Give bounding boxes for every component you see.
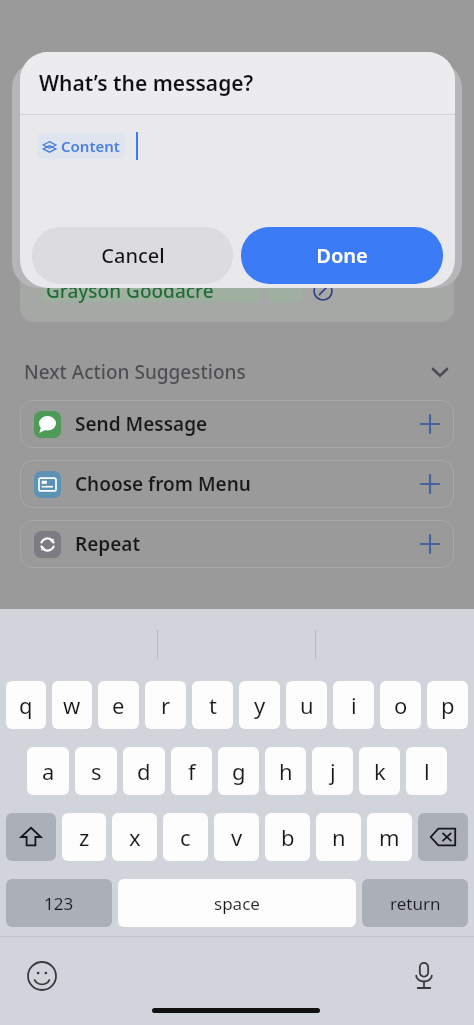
staticText: return bbox=[390, 892, 441, 915]
button[interactable]: Send Message bbox=[20, 400, 454, 448]
staticText: j bbox=[330, 756, 336, 786]
staticText: n bbox=[332, 822, 346, 852]
button[interactable]: e bbox=[98, 681, 139, 729]
other: Add Send Message bbox=[420, 414, 440, 434]
staticText: c bbox=[180, 822, 191, 852]
button[interactable]: n bbox=[316, 813, 361, 861]
button[interactable]: l bbox=[406, 747, 447, 795]
staticText: v bbox=[231, 822, 243, 852]
staticText: o bbox=[394, 690, 408, 720]
other: Collapse bbox=[430, 362, 450, 382]
staticText: b bbox=[281, 822, 295, 852]
button[interactable]: k bbox=[359, 747, 400, 795]
button[interactable]: x bbox=[112, 813, 157, 861]
staticText: s bbox=[91, 756, 102, 786]
button[interactable]: Cancel bbox=[32, 227, 233, 284]
button[interactable]: f bbox=[171, 747, 212, 795]
button[interactable]: Choose from Menu bbox=[20, 460, 454, 508]
staticText: Content bbox=[61, 136, 120, 156]
button[interactable]: Emoji bbox=[20, 954, 64, 998]
button[interactable]: o bbox=[380, 681, 421, 729]
staticText: f bbox=[188, 756, 196, 786]
other: Add Repeat bbox=[420, 534, 440, 554]
staticText: Repeat bbox=[75, 531, 141, 557]
staticText: What’s the message? bbox=[39, 69, 254, 98]
staticText: g bbox=[232, 756, 246, 786]
button[interactable]: t bbox=[192, 681, 233, 729]
staticText: r bbox=[161, 690, 171, 720]
staticText: l bbox=[424, 756, 430, 786]
button[interactable]: Repeat bbox=[20, 520, 454, 568]
button[interactable]: b bbox=[265, 813, 310, 861]
button[interactable]: space bbox=[118, 879, 356, 927]
staticText: x bbox=[129, 822, 141, 852]
button[interactable]: d bbox=[123, 747, 165, 795]
staticText: w bbox=[63, 690, 81, 720]
button[interactable]: c bbox=[163, 813, 208, 861]
staticText: Send Message bbox=[75, 411, 208, 437]
button[interactable]: m bbox=[367, 813, 412, 861]
staticText: m bbox=[379, 822, 400, 852]
button[interactable]: z bbox=[62, 813, 106, 861]
button[interactable]: Done bbox=[241, 227, 443, 284]
staticText: p bbox=[441, 690, 455, 720]
button[interactable]: j bbox=[312, 747, 353, 795]
staticText: Choose from Menu bbox=[75, 471, 251, 497]
button[interactable]: Content bbox=[37, 133, 125, 159]
button[interactable]: Backspace bbox=[418, 813, 468, 861]
button[interactable]: Next Action Suggestions bbox=[0, 352, 474, 392]
staticText: d bbox=[137, 756, 151, 786]
staticText: e bbox=[112, 690, 125, 720]
staticText: z bbox=[79, 822, 90, 852]
staticText: y bbox=[254, 690, 266, 720]
button[interactable]: 123 bbox=[6, 879, 112, 927]
button[interactable]: a bbox=[27, 747, 69, 795]
staticText: Grayson Goodacre bbox=[46, 278, 214, 304]
button[interactable]: return bbox=[362, 879, 468, 927]
button[interactable]: p bbox=[427, 681, 468, 729]
staticText: q bbox=[19, 690, 33, 720]
button[interactable]: y bbox=[239, 681, 280, 729]
staticText: k bbox=[374, 756, 386, 786]
staticText: t bbox=[209, 690, 217, 720]
other: Add Choose from Menu bbox=[420, 474, 440, 494]
button[interactable]: s bbox=[75, 747, 117, 795]
button[interactable]: Shift bbox=[6, 813, 56, 861]
staticText: a bbox=[42, 756, 55, 786]
button[interactable]: Dictation bbox=[402, 954, 446, 998]
button[interactable]: v bbox=[214, 813, 259, 861]
button[interactable]: u bbox=[286, 681, 327, 729]
staticText: Cancel bbox=[101, 242, 165, 269]
button[interactable]: r bbox=[145, 681, 186, 729]
button[interactable]: i bbox=[333, 681, 374, 729]
button[interactable]: h bbox=[265, 747, 306, 795]
staticText: h bbox=[279, 756, 293, 786]
staticText: Done bbox=[316, 242, 368, 269]
staticText: space bbox=[214, 892, 260, 915]
staticText: Next Action Suggestions bbox=[24, 359, 246, 385]
button[interactable]: g bbox=[218, 747, 259, 795]
staticText: 123 bbox=[44, 892, 74, 915]
button[interactable]: q bbox=[6, 681, 46, 729]
button[interactable]: w bbox=[52, 681, 92, 729]
staticText: u bbox=[300, 690, 314, 720]
staticText: i bbox=[351, 690, 357, 720]
